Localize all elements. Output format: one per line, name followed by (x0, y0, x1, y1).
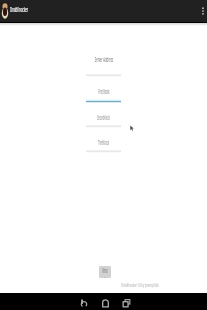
staticText: DroidKnocker (10, 5, 28, 15)
staticText: Server Address (95, 55, 113, 64)
button[interactable]: Home (97, 294, 114, 310)
button[interactable]: Server Address (0, 55, 207, 64)
staticText: Knock (102, 266, 108, 278)
button[interactable]: More options (196, 0, 207, 22)
button[interactable]: First Knock (0, 87, 207, 96)
staticText: Second Knock (97, 113, 110, 122)
button[interactable]: Knock (99, 266, 111, 278)
staticText: First Knock (98, 87, 110, 96)
button[interactable]: Back (75, 294, 92, 310)
button[interactable]: Recent apps (118, 294, 135, 310)
button[interactable]: Second Knock (0, 113, 207, 122)
staticText: DroidKnocker 1.0 by Jeremy Kolb (121, 281, 159, 289)
staticText: Third Knock (98, 138, 109, 147)
button[interactable]: Third Knock (0, 138, 207, 147)
